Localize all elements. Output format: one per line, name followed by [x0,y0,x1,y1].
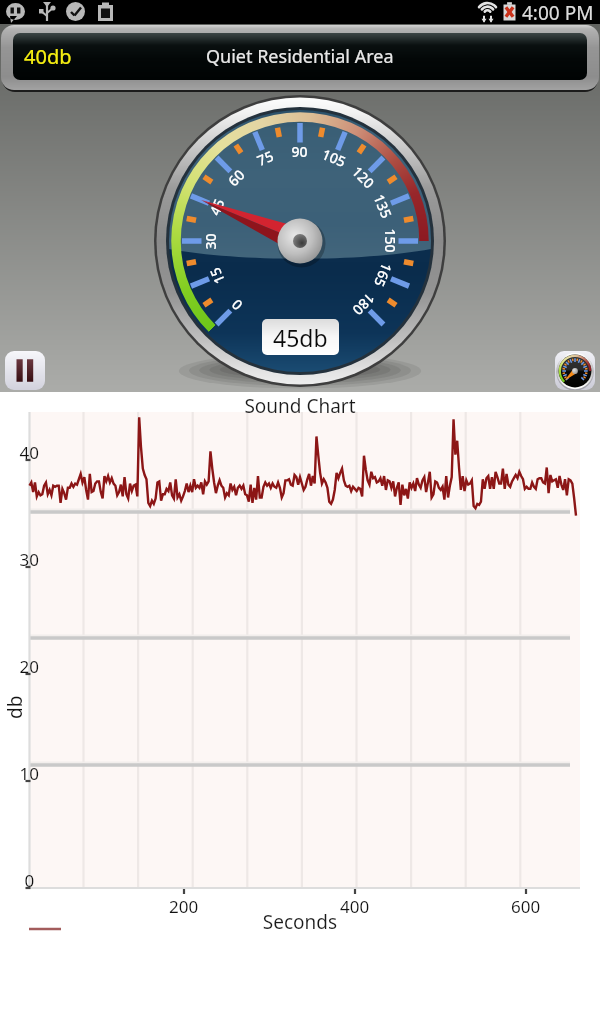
button[interactable]: 40db [13,33,587,80]
staticText: 4:00 PM [522,0,594,24]
staticText: Sound Chart [0,393,600,419]
staticText: 40db [24,43,72,70]
staticText: Seconds [0,909,600,935]
staticText: Quiet Residential Area [206,44,394,69]
button[interactable]: Pause [5,351,45,390]
button[interactable]: Meter [555,351,595,390]
staticText: 45db [273,322,328,353]
